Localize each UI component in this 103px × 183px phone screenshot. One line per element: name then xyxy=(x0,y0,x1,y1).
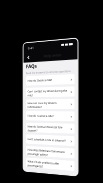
button[interactable]: How do I contact financial fare support? xyxy=(26,122,75,134)
button[interactable]: Can I schedule a ride in advance? xyxy=(26,134,75,146)
staticText: Can I contact my driver during the ride? xyxy=(28,88,69,96)
staticText: How do I book a ride? xyxy=(28,77,69,83)
staticText: Can I schedule a ride in advance? xyxy=(28,137,69,143)
staticText: How does Rideshare Taxi ensure passenger… xyxy=(28,148,69,157)
button[interactable]: How do I cancel a ride? xyxy=(26,111,75,121)
button[interactable]: How does Rideshare Taxi ensure passenger… xyxy=(26,146,75,159)
staticText: How do I cancel a ride? xyxy=(28,114,69,118)
button[interactable]: Can I contact my driver during the ride? xyxy=(26,86,75,97)
button[interactable]: Back xyxy=(26,54,31,61)
staticText: Read the answers to common questions xyxy=(26,69,71,75)
staticText: Help center xyxy=(44,52,62,58)
staticText: How can I see my driver's information? xyxy=(28,101,69,108)
button[interactable]: What if I am unable to offer passenger(s… xyxy=(26,157,75,171)
staticText: 9:41 xyxy=(28,45,35,50)
button[interactable]: How do I book a ride? xyxy=(26,74,75,86)
button[interactable]: How can I see my driver's information? xyxy=(26,99,75,109)
staticText: What if I am unable to offer passenger(s… xyxy=(28,159,69,170)
staticText: How do I contact financial fare support? xyxy=(28,124,69,133)
staticText: FAQs xyxy=(26,63,37,70)
